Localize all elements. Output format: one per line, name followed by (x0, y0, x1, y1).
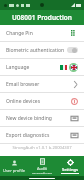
other: Export diagnostics (71, 132, 78, 139)
button[interactable]: User profile (0, 158, 28, 175)
other: Change Pin (71, 30, 78, 37)
staticText: Biometric authentication (6, 47, 67, 54)
staticText: StrongAuth v1.0.1 b.20004307 (0, 145, 84, 151)
button[interactable]: Audit operations (28, 156, 56, 176)
button[interactable]: Export diagnostics (0, 127, 84, 144)
button[interactable]: Settings (56, 157, 84, 176)
button[interactable]: Biometric authentication (0, 42, 84, 59)
button[interactable]: New device binding (0, 110, 84, 127)
button[interactable]: Email browser (0, 76, 84, 93)
staticText: Email browser (6, 81, 71, 88)
staticText: Audit operations (28, 166, 56, 174)
staticText: User profile (3, 168, 25, 173)
staticText: Change Pin (6, 30, 71, 37)
staticText: U08001 Production (12, 13, 72, 22)
staticText: Language (6, 64, 60, 71)
staticText: Settings (62, 167, 78, 172)
button[interactable]: Online devices (0, 93, 84, 110)
button[interactable]: Biometric authentication toggle (67, 47, 78, 53)
staticText: Online devices (6, 98, 71, 105)
other: New device binding (71, 115, 78, 122)
staticText: New device binding (6, 115, 71, 122)
button[interactable]: Change Pin (0, 25, 84, 42)
staticText: Export diagnostics (6, 132, 71, 139)
button[interactable]: Language (0, 59, 84, 76)
other: Online devices (71, 98, 78, 105)
other: Open (71, 81, 78, 88)
